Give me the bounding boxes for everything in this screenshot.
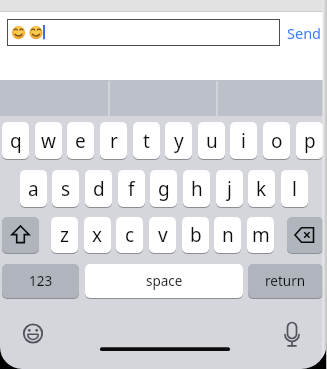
button[interactable]: t (133, 122, 160, 159)
button[interactable]: h (183, 170, 210, 207)
staticText: d (93, 176, 105, 202)
button[interactable]: o (263, 122, 290, 159)
button[interactable]: f (118, 170, 145, 207)
staticText: r (110, 128, 118, 154)
staticText: space (146, 272, 183, 290)
staticText: m (252, 222, 270, 248)
staticText: j (227, 176, 232, 202)
button[interactable]: a (20, 170, 47, 207)
staticText: h (191, 176, 203, 202)
staticText: v (158, 222, 168, 248)
staticText: u (206, 128, 218, 154)
button[interactable]: Send (286, 23, 322, 42)
button[interactable]: c (116, 217, 143, 253)
staticText: w (41, 128, 56, 154)
button[interactable]: 123 (2, 264, 79, 298)
button[interactable]: q (2, 122, 29, 159)
button[interactable]: k (248, 170, 275, 207)
button[interactable]: r (100, 122, 127, 159)
button[interactable]: v (149, 217, 176, 253)
staticText: z (60, 222, 69, 248)
button[interactable]: space (85, 264, 243, 298)
staticText: 123 (29, 272, 53, 290)
staticText: Send (287, 23, 322, 42)
button[interactable]: e (67, 122, 94, 159)
button[interactable]: p (296, 122, 323, 159)
button[interactable]: i (230, 122, 257, 159)
staticText: n (222, 222, 234, 248)
staticText: t (143, 128, 150, 154)
staticText: return (265, 272, 306, 290)
button[interactable]: w (35, 122, 62, 159)
button[interactable]: l (281, 170, 308, 207)
staticText: k (256, 176, 267, 202)
staticText: i (241, 128, 246, 154)
staticText: a (28, 176, 39, 202)
staticText: y (174, 128, 184, 154)
button[interactable] (287, 217, 323, 253)
button[interactable]: y (165, 122, 192, 159)
button[interactable] (2, 217, 39, 253)
button[interactable]: m (247, 217, 274, 253)
button[interactable]: u (198, 122, 225, 159)
staticText: g (158, 176, 170, 202)
staticText: f (128, 176, 135, 202)
staticText: b (190, 222, 202, 248)
button[interactable]: x (84, 217, 111, 253)
staticText: q (10, 128, 22, 154)
button[interactable]: n (214, 217, 241, 253)
staticText: c (125, 222, 135, 248)
staticText: p (304, 128, 316, 154)
staticText: x (92, 222, 103, 248)
button[interactable]: j (216, 170, 243, 207)
button[interactable]: z (51, 217, 78, 253)
staticText: l (292, 176, 297, 202)
staticText: o (271, 128, 283, 154)
button[interactable]: return (248, 264, 323, 298)
button[interactable]: b (182, 217, 209, 253)
button[interactable]: g (150, 170, 177, 207)
staticText: s (61, 176, 71, 202)
staticText: e (75, 128, 86, 154)
button[interactable]: d (85, 170, 112, 207)
button[interactable]: s (52, 170, 79, 207)
button[interactable] (7, 19, 280, 46)
